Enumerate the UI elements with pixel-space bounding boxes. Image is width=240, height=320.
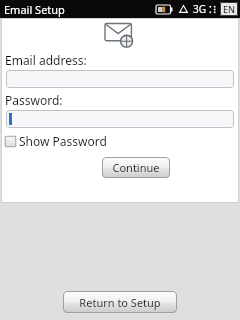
staticText: Password: xyxy=(5,92,63,108)
staticText: Return to Setup xyxy=(79,295,161,310)
staticText: Continue xyxy=(112,160,160,175)
staticText: Show Password xyxy=(19,133,107,149)
staticText: Email Setup xyxy=(4,2,65,17)
button[interactable]: Continue xyxy=(102,157,170,178)
button[interactable] xyxy=(6,70,234,88)
staticText: Email address: xyxy=(5,52,87,68)
button[interactable]: Show Password xyxy=(4,133,107,149)
staticText: 3G xyxy=(193,2,206,16)
button[interactable]: Return to Setup xyxy=(63,291,177,313)
other: Input language EN xyxy=(220,2,238,16)
staticText: EN xyxy=(223,3,235,15)
button[interactable] xyxy=(6,110,234,128)
